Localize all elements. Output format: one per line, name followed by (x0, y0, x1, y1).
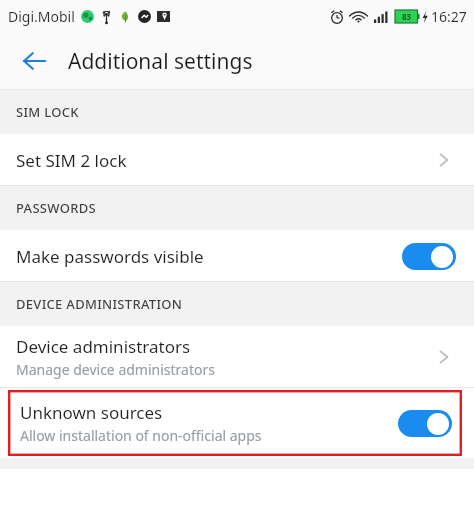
staticText: 16:27 (431, 7, 467, 26)
button[interactable]: Make passwords visible (0, 230, 474, 282)
button[interactable]: Toggle on (402, 243, 456, 270)
staticText: Set SIM 2 lock (16, 149, 127, 172)
staticText: Digi.Mobil (8, 7, 75, 26)
button[interactable]: Back (10, 37, 58, 85)
button[interactable]: Unknown sources (8, 390, 462, 456)
staticText: Make passwords visible (16, 245, 204, 268)
staticText: Allow installation of non-official apps (20, 426, 262, 445)
staticText: Manage device administrators (16, 360, 215, 379)
button[interactable]: Device administrators (0, 326, 474, 388)
staticText: DEVICE ADMINISTRATION (16, 295, 183, 313)
staticText: SIM LOCK (16, 103, 79, 121)
staticText: PASSWORDS (16, 199, 96, 217)
button[interactable]: Toggle on (398, 410, 452, 437)
staticText: 83 (402, 11, 412, 22)
other: Open (432, 148, 456, 172)
other: Open (432, 345, 456, 369)
staticText: Unknown sources (20, 401, 163, 424)
button[interactable]: Set SIM 2 lock (0, 134, 474, 186)
staticText: Device administrators (16, 335, 191, 358)
staticText: Additional settings (68, 47, 253, 76)
